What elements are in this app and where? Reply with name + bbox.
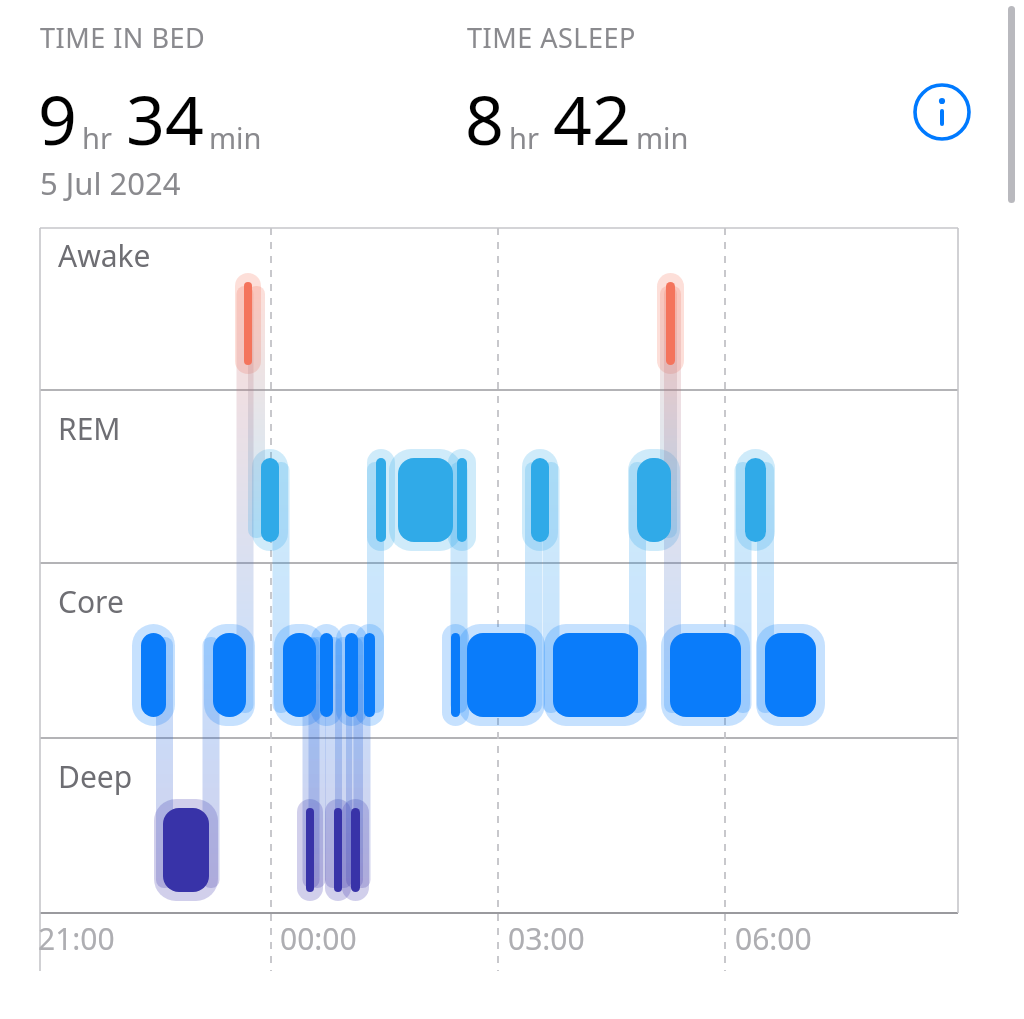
- staticText: Awake: [58, 235, 151, 276]
- staticText: 34: [126, 72, 204, 165]
- staticText: hr: [82, 118, 112, 157]
- staticText: 03:00: [508, 918, 585, 959]
- staticText: 21:00: [38, 918, 115, 959]
- staticText: Core: [58, 581, 124, 622]
- button[interactable]: About sleep stages: [912, 82, 972, 142]
- staticText: hr: [509, 118, 539, 157]
- staticText: 9: [38, 72, 77, 165]
- staticText: TIME ASLEEP: [467, 19, 636, 56]
- staticText: TIME IN BED: [40, 19, 206, 56]
- staticText: 00:00: [280, 918, 357, 959]
- staticText: min: [209, 118, 262, 157]
- staticText: 42: [553, 72, 631, 165]
- staticText: 5 Jul 2024: [40, 162, 181, 204]
- staticText: 06:00: [735, 918, 812, 959]
- staticText: Deep: [58, 756, 133, 797]
- staticText: REM: [58, 408, 121, 449]
- staticText: 8: [465, 72, 504, 165]
- staticText: min: [636, 118, 689, 157]
